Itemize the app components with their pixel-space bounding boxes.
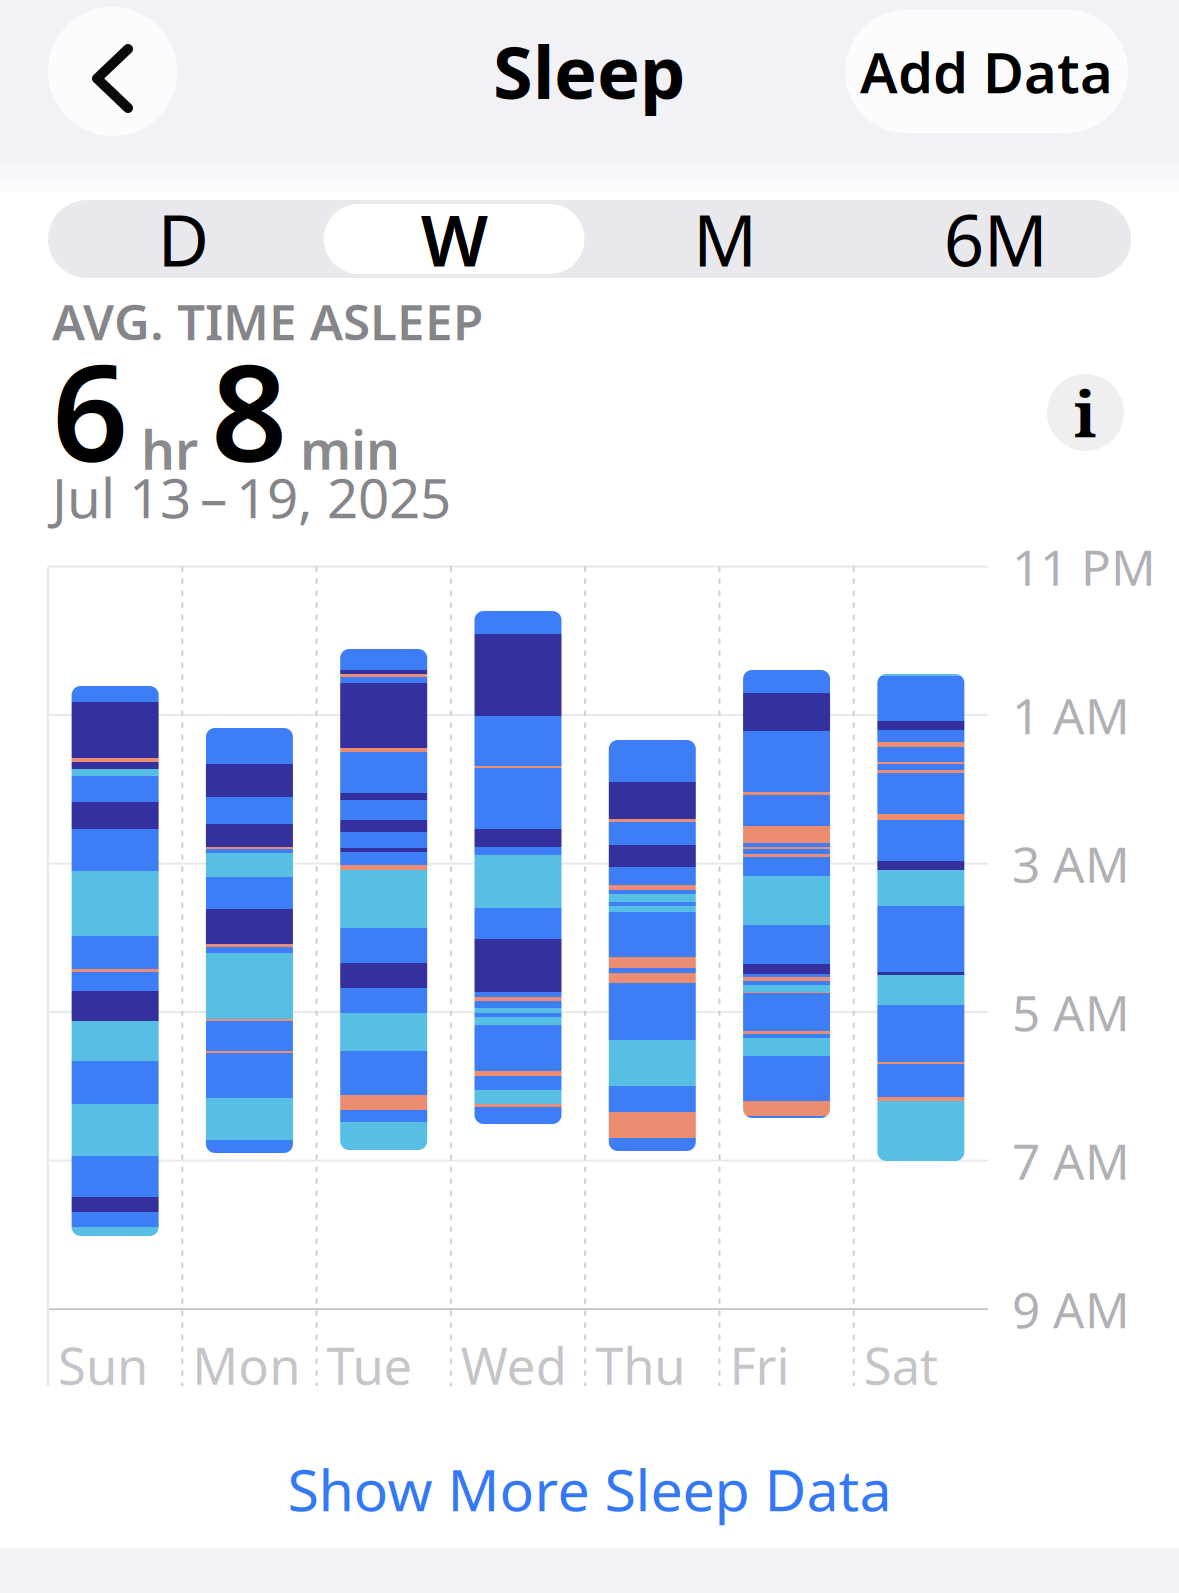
- staticText: i: [1074, 369, 1097, 456]
- button[interactable]: Back: [48, 7, 177, 136]
- staticText: D: [157, 192, 209, 286]
- staticText: Tue: [327, 1331, 413, 1399]
- button[interactable]: Info: [1047, 369, 1124, 456]
- staticText: Mon: [192, 1331, 300, 1399]
- staticText: M: [693, 192, 757, 286]
- staticText: 6: [52, 321, 128, 499]
- staticText: 11 PM: [1012, 534, 1156, 599]
- staticText: min: [300, 414, 400, 484]
- staticText: 6M: [944, 192, 1048, 286]
- button[interactable]: Show More Sleep Data: [251, 1433, 927, 1545]
- button[interactable]: M: [589, 200, 860, 278]
- button[interactable]: 6M: [860, 200, 1131, 278]
- staticText: 1 AM: [1012, 682, 1130, 748]
- staticText: Fri: [729, 1331, 789, 1399]
- staticText: Sun: [58, 1331, 148, 1399]
- staticText: AVG. TIME ASLEEP: [52, 288, 483, 354]
- staticText: Add Data: [860, 34, 1113, 109]
- button[interactable]: Add Data: [845, 10, 1128, 133]
- staticText: 5 AM: [1012, 979, 1130, 1045]
- button[interactable]: D: [48, 200, 319, 278]
- staticText: 3 AM: [1012, 831, 1130, 896]
- staticText: Show More Sleep Data: [287, 1451, 891, 1527]
- staticText: Sat: [864, 1331, 938, 1399]
- staticText: Wed: [461, 1331, 567, 1399]
- staticText: 8: [211, 321, 287, 499]
- staticText: Thu: [595, 1331, 685, 1399]
- staticText: Sleep: [493, 23, 686, 119]
- staticText: Jul 13 – 19, 2025: [52, 461, 451, 533]
- staticText: W: [421, 192, 488, 286]
- staticText: 9 AM: [1012, 1276, 1130, 1342]
- staticText: 7 AM: [1012, 1128, 1130, 1193]
- staticText: hr: [141, 414, 198, 484]
- button[interactable]: W: [319, 200, 590, 278]
